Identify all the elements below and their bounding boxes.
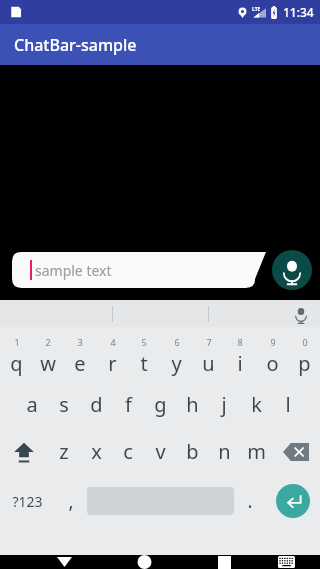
staticText: q	[10, 350, 23, 377]
staticText: t	[140, 350, 148, 377]
button[interactable]: 7	[192, 327, 224, 381]
button[interactable]: Enter	[276, 484, 310, 518]
button[interactable]: 5	[128, 327, 160, 381]
staticText: i	[237, 350, 243, 377]
staticText: 5	[141, 336, 147, 348]
button[interactable]: Hide keyboard	[44, 555, 84, 569]
button[interactable]: z	[48, 428, 80, 475]
staticText: ChatBar-sample	[14, 34, 137, 56]
button[interactable]: 2	[32, 327, 64, 381]
button[interactable]: Switch keyboard	[266, 555, 306, 569]
button[interactable]: Shift	[0, 428, 48, 475]
button[interactable]: 8	[224, 327, 256, 381]
staticText: ,	[68, 488, 74, 514]
staticText: w	[40, 350, 56, 377]
staticText: n	[218, 438, 231, 465]
button[interactable]: ,	[55, 475, 87, 527]
staticText: u	[202, 350, 215, 377]
button[interactable]: v	[144, 428, 176, 475]
button[interactable]: Voice input	[272, 250, 312, 290]
staticText: 8	[237, 336, 243, 348]
button[interactable]: h	[176, 381, 208, 428]
button[interactable]: 3	[64, 327, 96, 381]
staticText: z	[59, 438, 69, 465]
button[interactable]: l	[272, 381, 304, 428]
button[interactable]: 6	[160, 327, 192, 381]
button[interactable]: n	[208, 428, 240, 475]
button[interactable]: f	[112, 381, 144, 428]
staticText: o	[266, 350, 279, 377]
staticText: e	[74, 350, 86, 377]
button[interactable]: Recent apps	[204, 555, 244, 569]
button[interactable]: b	[176, 428, 208, 475]
staticText: g	[154, 391, 167, 418]
staticText: k	[251, 391, 262, 418]
staticText: f	[125, 391, 132, 418]
staticText: 3	[77, 336, 83, 348]
button[interactable]: ?123	[0, 475, 55, 527]
button[interactable]: Voice typing	[290, 303, 312, 325]
staticText: 1	[14, 336, 20, 348]
staticText: a	[26, 391, 38, 418]
staticText: m	[247, 438, 266, 465]
staticText: LTE	[252, 6, 261, 13]
staticText: l	[285, 391, 291, 418]
staticText: 2	[45, 336, 51, 348]
button[interactable]: 9	[256, 327, 288, 381]
staticText: 11:34	[283, 4, 314, 20]
staticText: c	[123, 438, 133, 465]
staticText: 6	[174, 336, 180, 348]
button[interactable]: c	[112, 428, 144, 475]
button[interactable]: k	[240, 381, 272, 428]
button[interactable]: sample text	[12, 252, 266, 288]
button[interactable]: d	[80, 381, 112, 428]
button[interactable]: j	[208, 381, 240, 428]
staticText: sample text	[35, 261, 112, 280]
button[interactable]: a	[16, 381, 48, 428]
staticText: r	[108, 350, 117, 377]
button[interactable]: m	[240, 428, 272, 475]
button[interactable]: 1	[0, 327, 32, 381]
staticText: 9	[270, 336, 276, 348]
button[interactable]: Backspace	[272, 428, 320, 475]
staticText: 7	[206, 336, 212, 348]
staticText: s	[59, 391, 69, 418]
staticText: .	[247, 488, 253, 514]
staticText: 0	[302, 336, 308, 348]
button[interactable]: x	[80, 428, 112, 475]
button[interactable]: Home	[124, 555, 164, 569]
staticText: ?123	[12, 492, 43, 511]
staticText: d	[90, 391, 103, 418]
staticText: 4	[110, 336, 116, 348]
staticText: y	[171, 350, 182, 377]
button[interactable]: .	[234, 475, 266, 527]
button[interactable]: s	[48, 381, 80, 428]
staticText: v	[155, 438, 166, 465]
button[interactable]: 0	[288, 327, 320, 381]
staticText: x	[91, 438, 102, 465]
staticText: j	[221, 391, 227, 418]
button[interactable]: g	[144, 381, 176, 428]
staticText: b	[186, 438, 199, 465]
staticText: p	[298, 350, 311, 377]
button[interactable]: 4	[96, 327, 128, 381]
staticText: h	[186, 391, 199, 418]
